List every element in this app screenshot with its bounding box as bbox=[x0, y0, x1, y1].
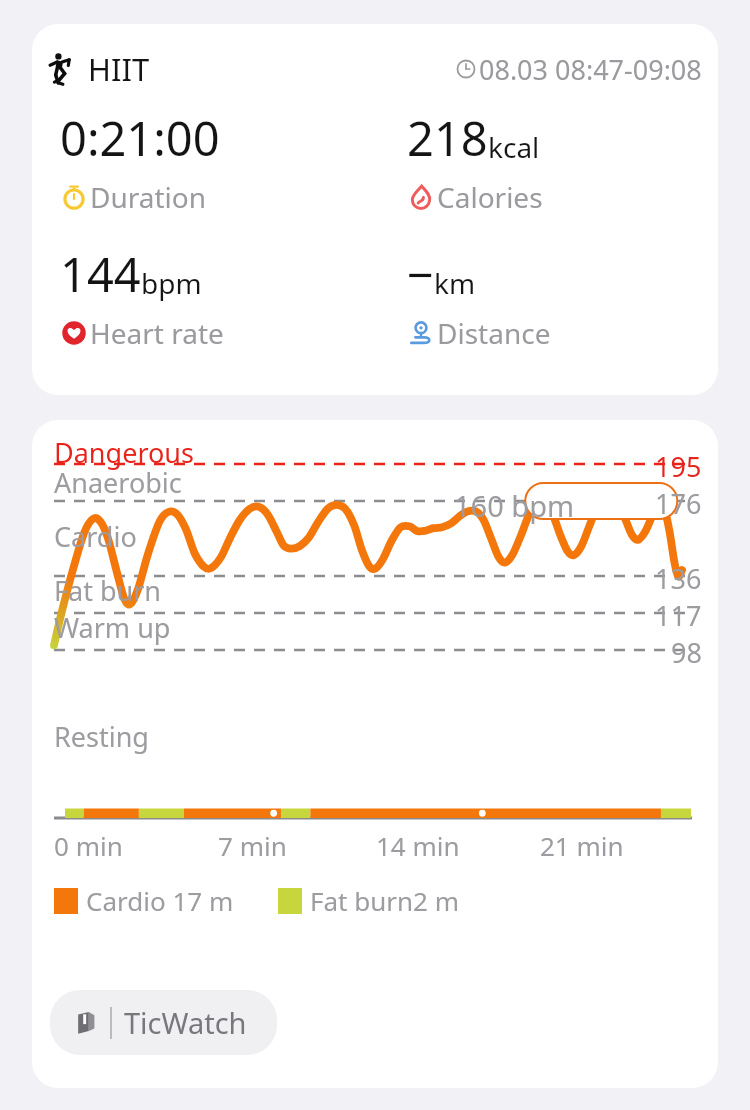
staticText: Warm up bbox=[54, 609, 171, 646]
button[interactable]: − bbox=[407, 242, 718, 352]
staticText: 144 bbox=[60, 242, 141, 306]
staticText: 176 bbox=[655, 485, 702, 522]
staticText: HIIT bbox=[88, 48, 150, 90]
staticText: bpm bbox=[141, 264, 202, 302]
staticText: 218 bbox=[407, 106, 488, 170]
button[interactable]: 218 bbox=[407, 106, 718, 216]
button[interactable]: 144 bbox=[60, 242, 375, 352]
staticText: 08.03 08:47-09:08 bbox=[479, 51, 702, 88]
staticText: Cardio 17 m bbox=[86, 883, 234, 918]
staticText: 195 bbox=[655, 448, 702, 485]
staticText: Fat burn2 m bbox=[310, 883, 460, 918]
button[interactable]: TicWatch bbox=[50, 990, 277, 1055]
staticText: 21 min bbox=[540, 828, 624, 863]
staticText: Distance bbox=[437, 314, 551, 352]
staticText: Cardio bbox=[54, 518, 137, 555]
staticText: 98 bbox=[671, 634, 702, 671]
staticText: 0:21:00 bbox=[60, 106, 220, 170]
staticText: Anaerobic bbox=[54, 464, 182, 501]
staticText: Dangerous bbox=[54, 434, 194, 471]
staticText: Duration bbox=[90, 178, 207, 216]
staticText: Resting bbox=[54, 718, 149, 755]
staticText: 136 bbox=[655, 560, 702, 597]
other: HIIT workout bbox=[44, 51, 80, 87]
staticText: − bbox=[407, 242, 434, 306]
staticText: 117 bbox=[655, 597, 702, 634]
button[interactable]: 0:21:00 bbox=[60, 106, 375, 216]
staticText: Heart rate bbox=[90, 314, 224, 352]
staticText: km bbox=[434, 264, 476, 302]
staticText: Calories bbox=[437, 178, 543, 216]
staticText: 14 min bbox=[376, 828, 460, 863]
staticText: kcal bbox=[488, 128, 540, 166]
staticText: 160 bpm bbox=[454, 486, 575, 525]
staticText: 0 min bbox=[54, 828, 123, 863]
staticText: TicWatch bbox=[124, 1003, 247, 1042]
staticText: 7 min bbox=[218, 828, 287, 863]
staticText: Fat burn bbox=[54, 572, 162, 609]
